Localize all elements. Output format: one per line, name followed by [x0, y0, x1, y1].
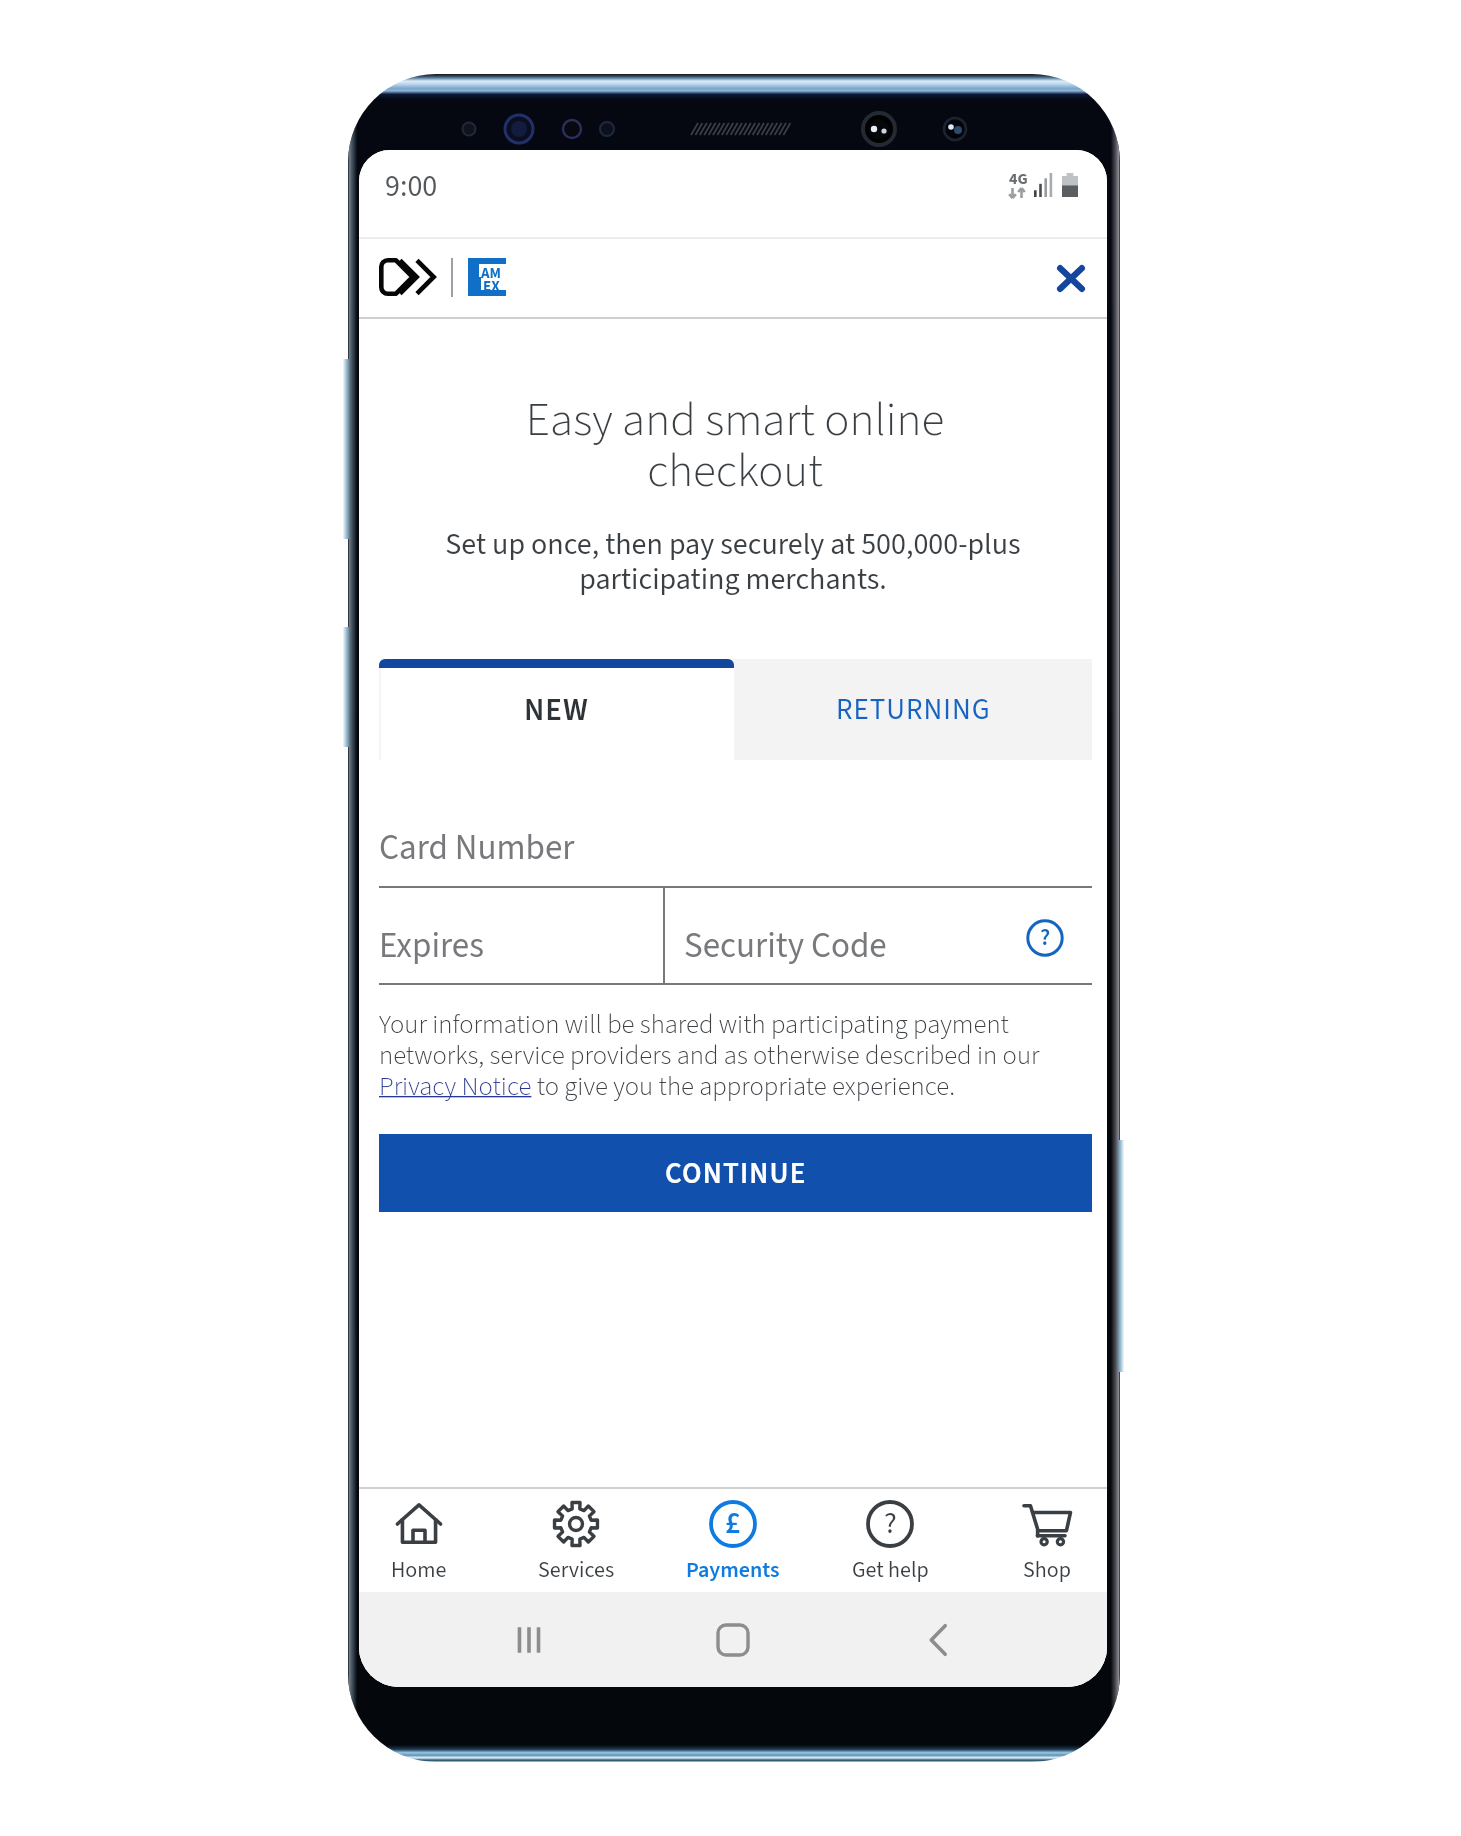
staticText: Payments	[686, 1554, 780, 1585]
button[interactable]: NEW	[379, 659, 734, 760]
staticText: ?	[1040, 921, 1051, 954]
button[interactable]: ?	[815, 1492, 965, 1592]
staticText: £	[725, 1502, 741, 1545]
staticText: RETURNING	[836, 689, 991, 730]
staticText: Expires	[379, 921, 484, 971]
staticText: Services	[538, 1554, 615, 1585]
button[interactable]: Home	[698, 1605, 768, 1675]
staticText: 9:00	[385, 165, 438, 208]
button[interactable]: Security code help	[1019, 912, 1071, 964]
staticText: AM	[481, 263, 502, 284]
staticText: Get help	[852, 1554, 929, 1585]
staticText: Security Code	[684, 921, 887, 971]
button[interactable]: RETURNING	[734, 659, 1092, 760]
staticText: Home	[391, 1554, 447, 1585]
button[interactable]: Your information will be shared with par…	[379, 1006, 1103, 1106]
staticText: Set up once, then pay securely at 500,00…	[376, 523, 1090, 601]
staticText: EX	[483, 276, 500, 296]
button[interactable]: Back	[903, 1605, 973, 1675]
button[interactable]: CONTINUE	[379, 1134, 1092, 1212]
staticText: Easy and smart online checkout	[378, 387, 1092, 504]
button[interactable]: Shop	[972, 1492, 1107, 1592]
button[interactable]: £	[658, 1492, 808, 1592]
staticText: ?	[884, 1502, 897, 1545]
staticText: CONTINUE	[665, 1153, 807, 1194]
button[interactable]: Services	[501, 1492, 651, 1592]
button[interactable]: Recent apps	[494, 1605, 564, 1675]
staticText: Card Number	[379, 823, 575, 873]
button[interactable]: Home	[359, 1492, 494, 1592]
staticText: Shop	[1023, 1554, 1071, 1585]
button[interactable]: Close	[1043, 250, 1099, 306]
staticText: 4G	[1009, 168, 1028, 191]
staticText: NEW	[524, 688, 589, 732]
